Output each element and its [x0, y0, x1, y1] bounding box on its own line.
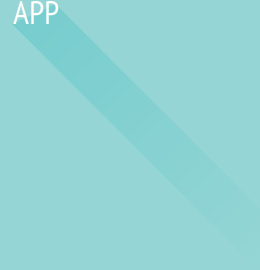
staticText: APP [13, 0, 59, 33]
